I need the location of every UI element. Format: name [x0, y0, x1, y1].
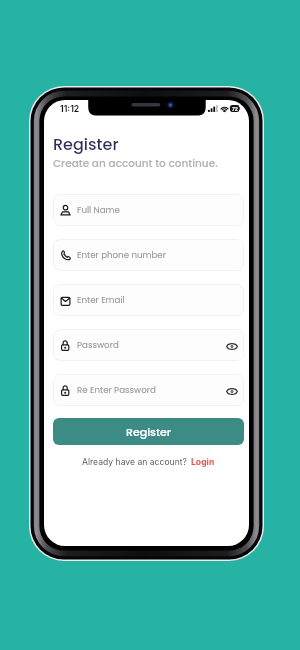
staticText: Login: [191, 457, 215, 467]
button[interactable]: Show password: [223, 331, 241, 361]
button[interactable]: Full Name: [53, 194, 244, 226]
staticText: Enter Email: [77, 294, 125, 306]
staticText: 11:12: [60, 104, 80, 114]
staticText: Full Name: [77, 204, 120, 216]
staticText: Register: [53, 133, 119, 155]
staticText: Password: [77, 339, 119, 351]
button[interactable]: Register: [53, 418, 244, 445]
button[interactable]: Show password: [223, 376, 241, 406]
staticText: Enter phone number: [77, 249, 166, 261]
staticText: Create an account to continue.: [53, 156, 218, 171]
staticText: 72: [232, 106, 238, 112]
button[interactable]: Password: [53, 329, 244, 361]
button[interactable]: Enter Email: [53, 284, 244, 316]
staticText: Already have an account?: [82, 457, 187, 467]
button[interactable]: Enter phone number: [53, 239, 244, 271]
button[interactable]: Login: [191, 457, 215, 467]
button[interactable]: Re Enter Password: [53, 374, 244, 406]
staticText: Re Enter Password: [77, 384, 156, 396]
staticText: Register: [126, 424, 172, 439]
